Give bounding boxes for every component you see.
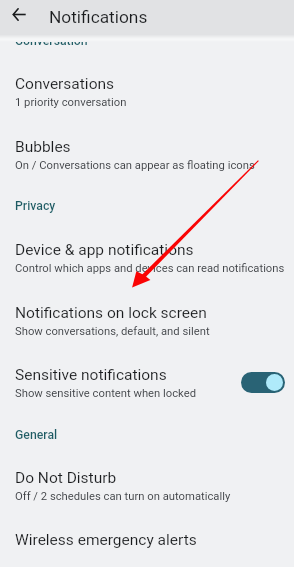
button[interactable]: Bubbles — [0, 127, 294, 194]
staticText: Show sensitive content when locked — [15, 387, 197, 400]
staticText: Bubbles — [15, 138, 71, 156]
staticText: Conversation — [15, 34, 88, 48]
staticText: Device & app notifications — [15, 241, 194, 259]
staticText: Notifications on lock screen — [15, 304, 207, 322]
staticText: Control which apps and devices can read … — [15, 262, 285, 275]
staticText: Off / 2 schedules can turn on automatica… — [15, 490, 231, 503]
staticText: 1 priority conversation — [15, 96, 127, 109]
button[interactable]: Wireless emergency alerts — [0, 520, 294, 567]
staticText: Privacy — [15, 199, 56, 213]
staticText: Do Not Disturb — [15, 469, 117, 487]
staticText: Show conversations, default, and silent — [15, 325, 210, 338]
button[interactable]: Conversations — [0, 64, 294, 127]
staticText: Conversations — [15, 75, 115, 93]
button[interactable]: Do Not Disturb — [0, 458, 294, 520]
staticText: Notifications — [49, 7, 148, 27]
staticText: On / Conversations can appear as floatin… — [15, 159, 255, 172]
staticText: General — [15, 428, 58, 442]
button[interactable]: Navigate up — [7, 2, 32, 27]
button[interactable]: Device & app notifications — [0, 230, 294, 293]
staticText: Wireless emergency alerts — [15, 531, 197, 549]
button[interactable]: Sensitive notifications, on — [241, 372, 285, 393]
button[interactable]: Notifications on lock screen — [0, 293, 294, 355]
staticText: Sensitive notifications — [15, 366, 167, 384]
button[interactable]: Sensitive notifications — [0, 355, 294, 423]
